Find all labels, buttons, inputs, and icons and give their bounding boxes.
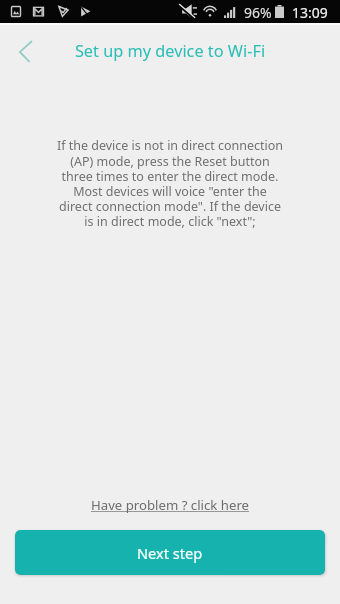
staticText: Next step (137, 543, 203, 563)
button[interactable]: Have problem ? click here (0, 498, 340, 526)
staticText: 13:09 (292, 3, 328, 22)
button[interactable]: Back (5, 31, 45, 71)
button[interactable]: Next step (15, 530, 325, 575)
staticText: Set up my device to Wi-Fi (0, 40, 340, 62)
staticText: Have problem ? click here (91, 496, 250, 514)
staticText: 96% (244, 3, 272, 22)
staticText: If the device is not in direct connectio… (16, 137, 324, 230)
